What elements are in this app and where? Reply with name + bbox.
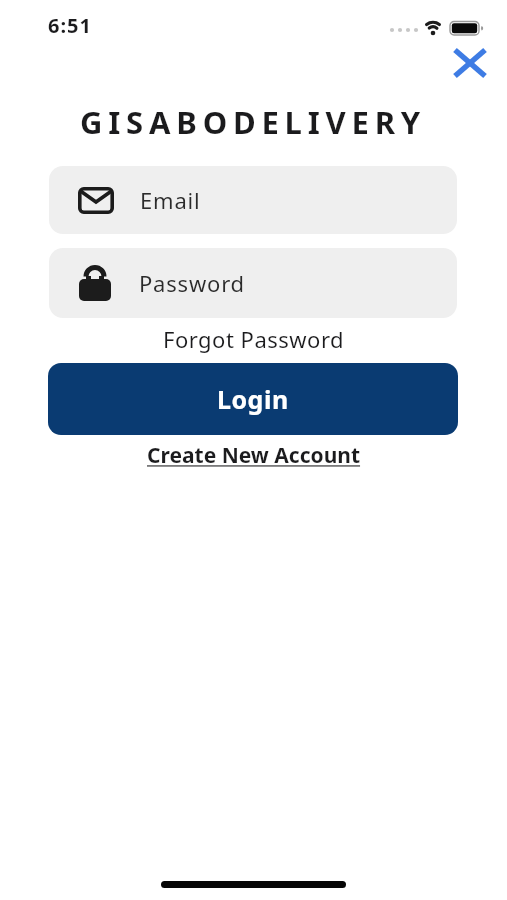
button[interactable]: Login xyxy=(48,363,458,435)
button[interactable]: Forgot Password xyxy=(163,324,345,354)
button[interactable]: Create New Account xyxy=(147,441,361,470)
staticText: 6:51 xyxy=(48,12,92,39)
staticText: Login xyxy=(217,382,289,416)
button[interactable]: Password xyxy=(49,248,457,318)
staticText: Email xyxy=(140,185,201,215)
button[interactable]: Email xyxy=(49,166,457,234)
staticText: GISABODELIVERY xyxy=(80,101,427,143)
button[interactable] xyxy=(445,38,495,88)
staticText: Password xyxy=(139,268,245,298)
